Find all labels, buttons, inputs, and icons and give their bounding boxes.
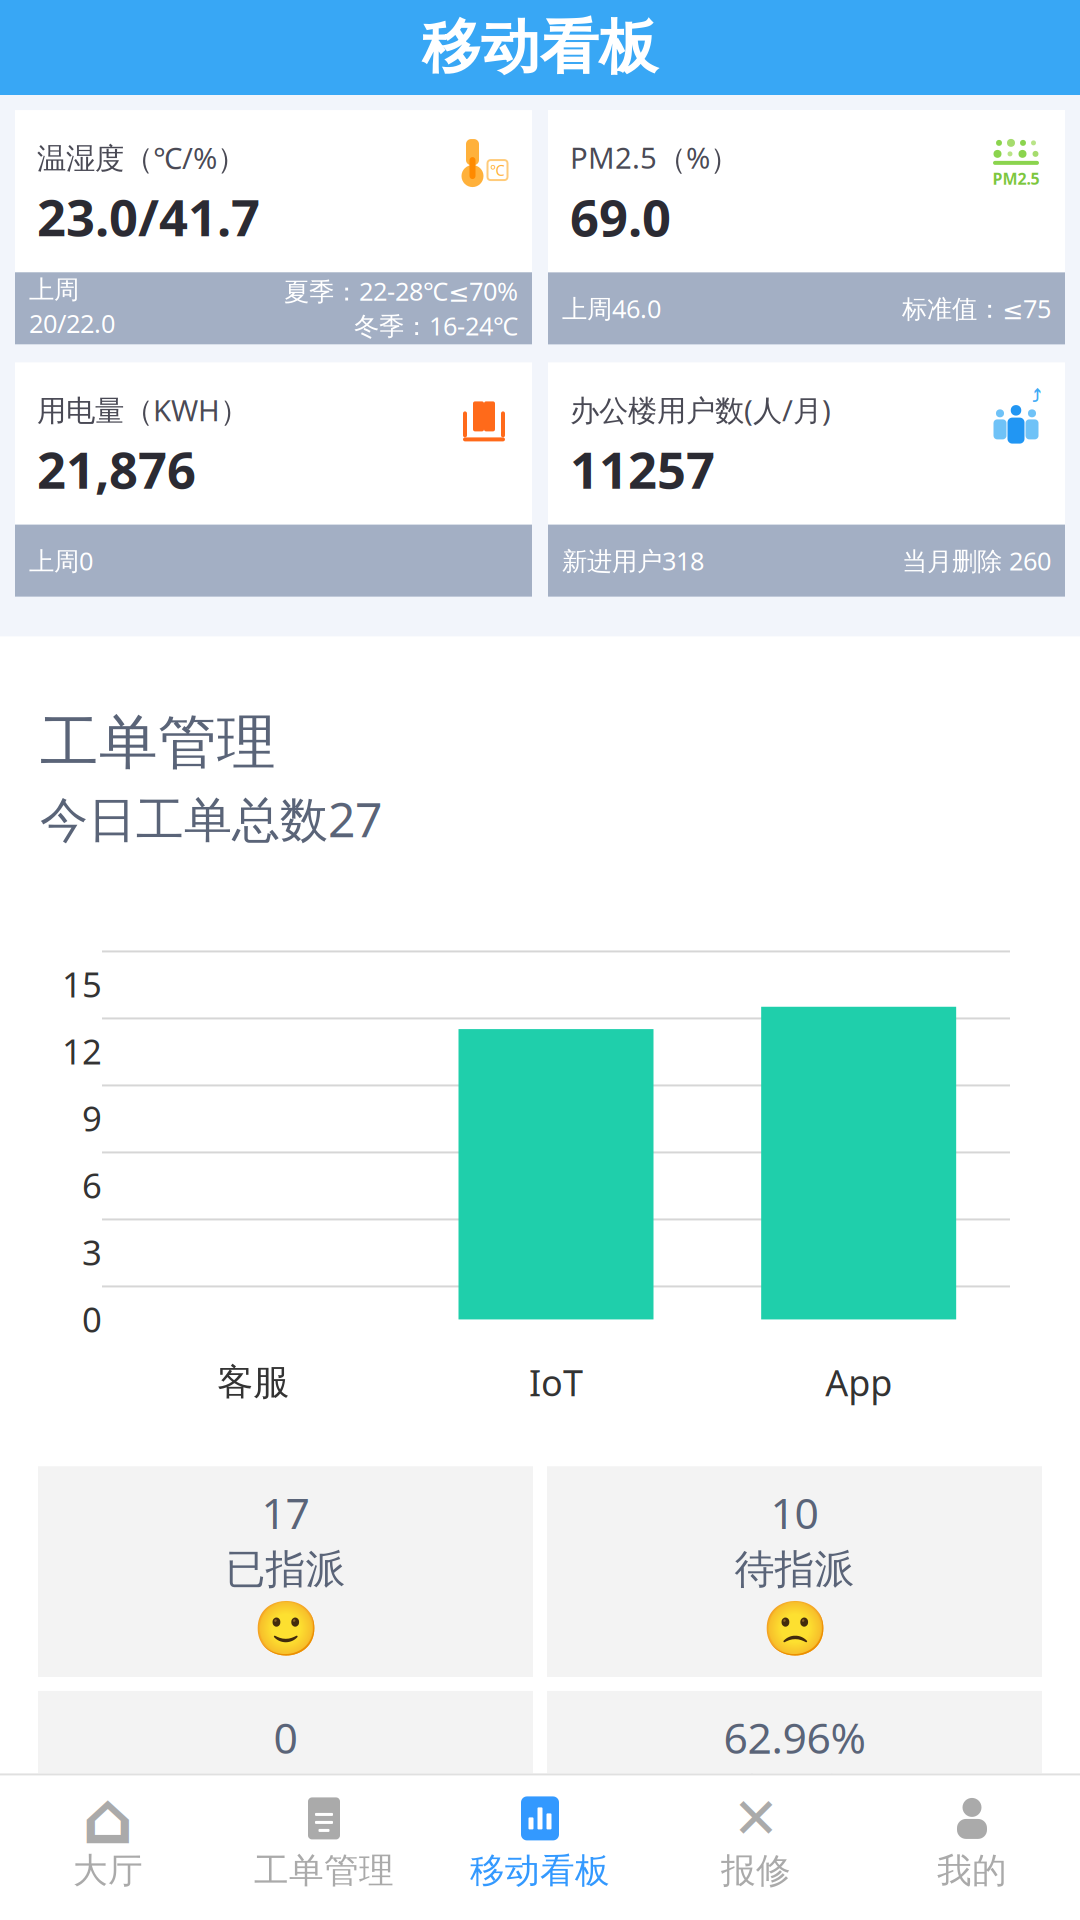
staticText: 17 — [261, 1484, 309, 1541]
staticText: 12 — [62, 1028, 102, 1074]
staticText: IoT — [529, 1358, 583, 1406]
staticText: 已超时 — [225, 1770, 345, 1819]
button[interactable]: PM2.5（%） — [548, 110, 1065, 344]
staticText: 上周 — [29, 274, 79, 305]
button[interactable]: ⌂ — [0, 1785, 216, 1902]
staticText: ✕ — [732, 1787, 779, 1850]
staticText: 10 — [770, 1484, 818, 1541]
staticText: 夏季：22-28℃≤70% — [284, 274, 518, 308]
staticText: 办公楼用户数(人/月) — [570, 390, 831, 429]
staticText: 今日工单总数27 — [40, 787, 382, 850]
button[interactable]: 0 — [38, 1691, 533, 1837]
staticText: App — [825, 1358, 892, 1406]
staticText: 工单管理 — [40, 707, 276, 779]
staticText: 上周0 — [29, 544, 93, 577]
staticText: 15 — [62, 961, 102, 1007]
staticText: 我的 — [937, 1849, 1007, 1892]
staticText: ℃ — [490, 160, 505, 180]
button[interactable]: 温湿度（℃/%） — [15, 110, 532, 344]
staticText: 🙁 — [761, 1598, 827, 1659]
staticText: 完成率 — [734, 1770, 854, 1819]
button[interactable]: 工单管理 — [216, 1785, 432, 1902]
staticText: 0 — [273, 1709, 297, 1766]
staticText: 69.0 — [570, 183, 671, 250]
staticText: 62.96% — [723, 1709, 865, 1766]
button[interactable]: 移动看板 — [432, 1785, 648, 1902]
staticText: 冬季：16-24℃ — [354, 309, 518, 342]
staticText: 大厅 — [73, 1849, 143, 1892]
staticText: ⤴ — [1032, 387, 1041, 404]
staticText: ⌂ — [82, 1778, 134, 1859]
staticText: 移动看板 — [470, 1849, 610, 1892]
button[interactable]: 我的 — [864, 1785, 1080, 1902]
button[interactable]: 62.96% — [547, 1691, 1042, 1837]
staticText: 当月删除 260 — [902, 544, 1051, 577]
staticText: PM2.5 — [992, 168, 1039, 189]
button[interactable]: 17 — [38, 1466, 533, 1677]
button[interactable]: 10 — [547, 1466, 1042, 1677]
button[interactable]: 用电量（KWH） — [15, 362, 532, 597]
staticText: 用电量（KWH） — [37, 390, 249, 429]
staticText: 客服 — [217, 1360, 289, 1404]
staticText: 标准值：≤75 — [902, 292, 1051, 325]
staticText: 待指派 — [734, 1545, 854, 1594]
staticText: PM2.5（%） — [570, 138, 739, 177]
button[interactable]: ✕ — [648, 1785, 864, 1902]
staticText: 上周46.0 — [562, 292, 661, 325]
staticText: 11257 — [570, 435, 715, 503]
staticText: 温湿度（℃/%） — [37, 138, 246, 177]
staticText: 0 — [82, 1296, 102, 1342]
staticText: 6 — [82, 1162, 102, 1208]
staticText: 移动看板 — [422, 11, 658, 84]
staticText: 3 — [82, 1229, 102, 1275]
staticText: 已指派 — [225, 1545, 345, 1594]
staticText: 工单管理 — [254, 1849, 394, 1892]
staticText: 9 — [82, 1095, 102, 1141]
staticText: 23.0/41.7 — [37, 183, 260, 250]
staticText: 报修 — [721, 1849, 791, 1892]
staticText: 21,876 — [37, 435, 196, 503]
staticText: 🙂 — [252, 1598, 318, 1659]
button[interactable]: 办公楼用户数(人/月) — [548, 362, 1065, 597]
staticText: 20/22.0 — [29, 306, 115, 340]
staticText: 新进用户318 — [562, 544, 704, 577]
